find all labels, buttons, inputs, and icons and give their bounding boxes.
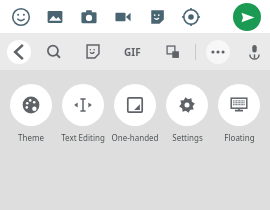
button[interactable]: Location	[182, 8, 200, 26]
button[interactable]: Voice input	[246, 43, 263, 60]
button[interactable]: Video	[114, 8, 132, 26]
button[interactable]: Send	[233, 3, 261, 31]
button[interactable]: Translate	[165, 44, 181, 60]
button[interactable]: Floating	[214, 84, 264, 143]
staticText: Theme	[18, 132, 44, 143]
button[interactable]: Emoji	[12, 8, 30, 26]
button[interactable]: Text Editing	[58, 84, 108, 143]
staticText: Floating	[224, 132, 255, 143]
button[interactable]: Theme	[6, 84, 56, 143]
button[interactable]: Stickers	[84, 43, 101, 60]
button[interactable]: Stickers	[148, 8, 166, 26]
button[interactable]: Search	[45, 43, 63, 61]
button[interactable]: Camera	[80, 8, 98, 26]
staticText: One-handed	[111, 132, 159, 143]
staticText: Settings	[172, 132, 203, 143]
button[interactable]: GIF	[111, 33, 153, 70]
button[interactable]: Gallery	[46, 8, 64, 26]
staticText: Text Editing	[61, 132, 105, 143]
staticText: GIF	[124, 45, 141, 59]
button[interactable]: More options	[206, 40, 230, 64]
button[interactable]: One-handed	[110, 84, 160, 143]
button[interactable]: Back	[7, 40, 31, 64]
button[interactable]: Settings	[162, 84, 212, 143]
